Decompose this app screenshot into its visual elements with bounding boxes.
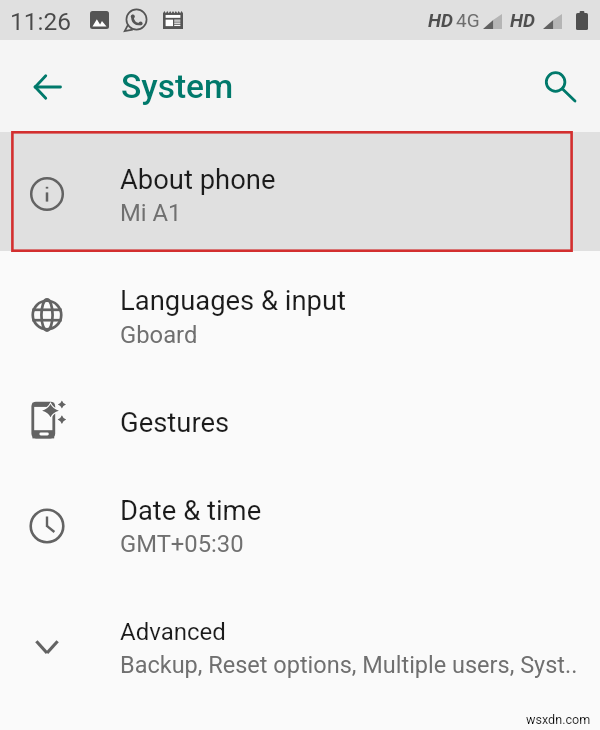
button[interactable]: Back — [23, 62, 71, 110]
staticText: Gestures — [120, 407, 230, 439]
staticText: HD — [510, 9, 535, 31]
button[interactable]: About phone — [0, 132, 600, 251]
staticText: Backup, Reset options, Multiple users, S… — [120, 651, 578, 679]
staticText: wsxdn.com — [526, 712, 591, 727]
staticText: Advanced — [120, 618, 226, 646]
button[interactable]: Languages & input — [0, 251, 600, 371]
staticText: 11:26 — [10, 7, 72, 36]
staticText: GMT+05:30 — [120, 530, 244, 558]
staticText: HD — [428, 9, 453, 31]
button[interactable]: Date & time — [0, 476, 600, 594]
staticText: 4G — [456, 9, 480, 31]
staticText: Languages & input — [120, 285, 347, 317]
staticText: Date & time — [120, 495, 262, 527]
staticText: About phone — [120, 164, 276, 196]
button[interactable]: Gestures — [0, 371, 600, 476]
staticText: System — [121, 67, 234, 106]
staticText: Mi A1 — [120, 199, 182, 227]
staticText: Gboard — [120, 321, 198, 349]
button[interactable]: Search — [536, 62, 584, 110]
button[interactable]: Advanced — [0, 594, 600, 712]
